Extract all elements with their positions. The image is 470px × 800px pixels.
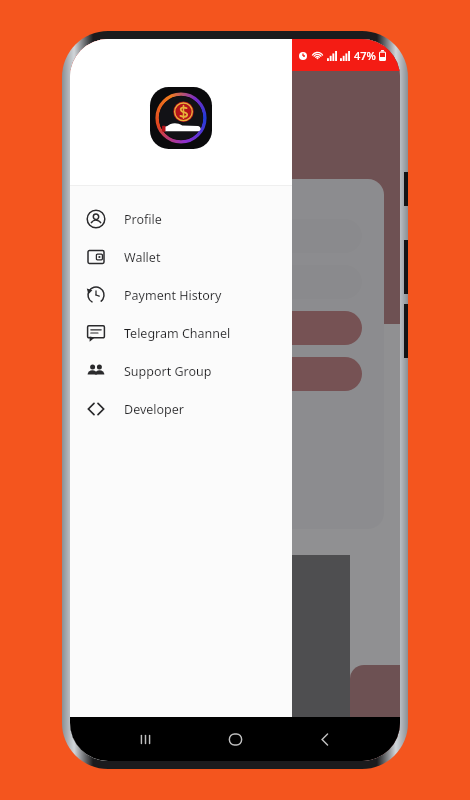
button[interactable]: Back: [280, 717, 370, 761]
button[interactable]: Recent apps: [100, 717, 190, 761]
button[interactable]: Payment History: [70, 276, 292, 314]
button[interactable]: Developer: [70, 390, 292, 428]
staticText: Support Group: [124, 363, 212, 380]
button[interactable]: Telegram Channel: [70, 314, 292, 352]
button[interactable]: Support Group: [70, 352, 292, 390]
button[interactable]: Home: [190, 717, 280, 761]
staticText: Payment History: [124, 287, 222, 304]
button[interactable]: Profile: [70, 200, 292, 238]
staticText: Profile: [124, 211, 162, 228]
staticText: Developer: [124, 401, 185, 418]
staticText: Wallet: [124, 249, 161, 266]
staticText: 47%: [354, 48, 376, 63]
button[interactable]: Wallet: [70, 238, 292, 276]
staticText: Telegram Channel: [124, 325, 231, 342]
